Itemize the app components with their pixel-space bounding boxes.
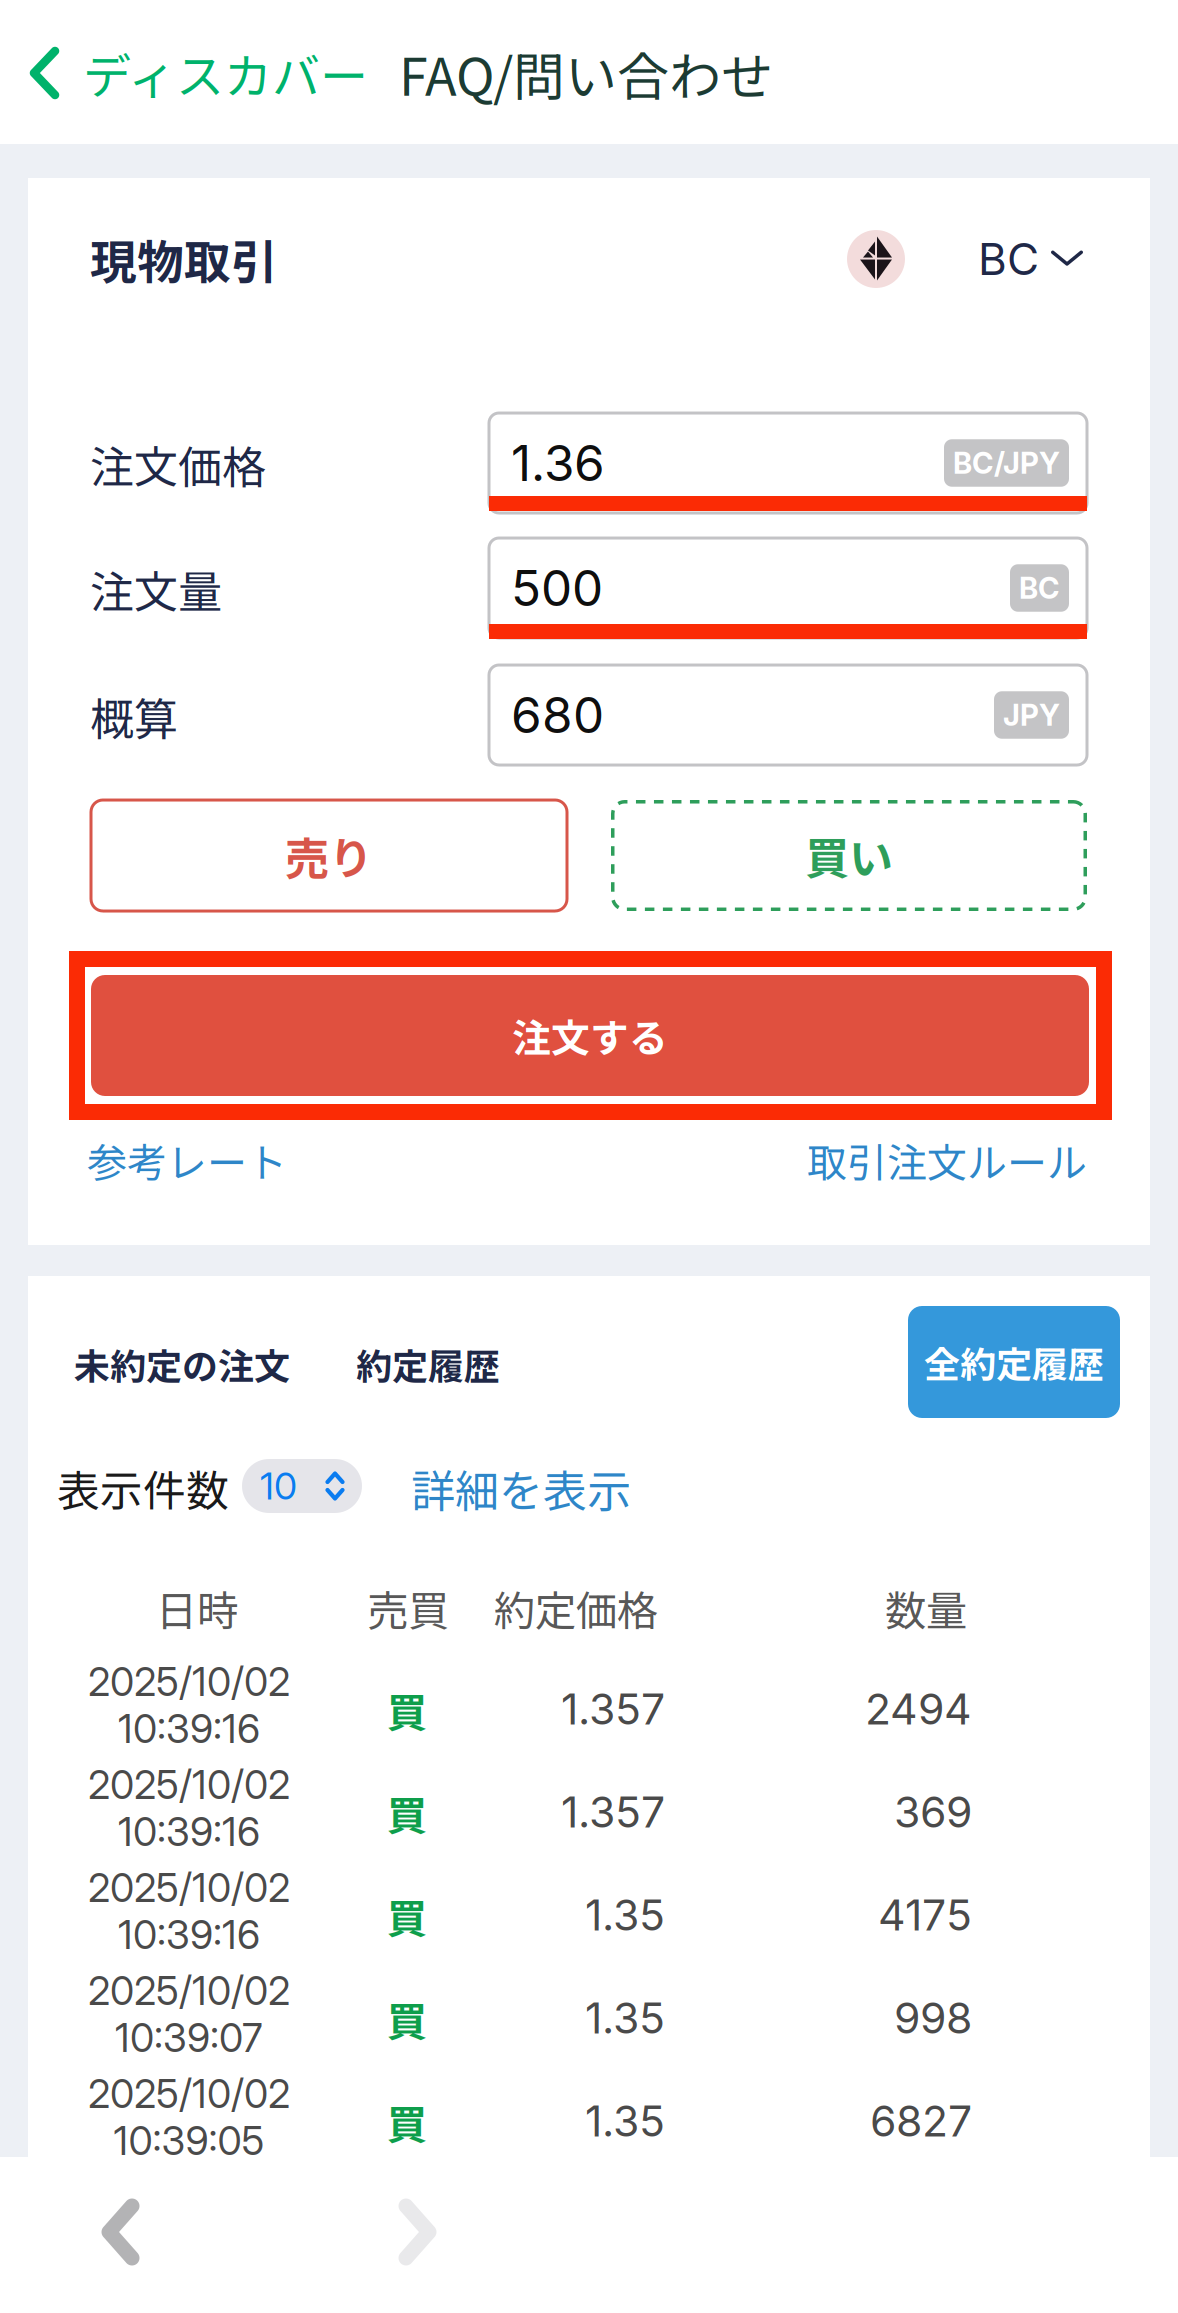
staticText: BC/JPY (953, 445, 1060, 481)
button[interactable]: 売り (91, 800, 567, 911)
staticText: 10:39:16 (118, 1705, 260, 1753)
staticText: 表示件数 (57, 1457, 229, 1519)
staticText: 売買 (367, 1578, 449, 1638)
staticText: 2025/10/02 (88, 1864, 290, 1912)
button[interactable]: 10 (242, 1459, 362, 1513)
staticText: 10 (260, 1463, 297, 1509)
button[interactable]: 未約定の注文 (74, 1328, 290, 1400)
staticText: 買 (387, 1990, 427, 2048)
staticText: BC (978, 232, 1039, 286)
staticText: BC (1019, 570, 1060, 606)
staticText: 現物取引 (90, 225, 278, 293)
staticText: 買 (387, 2093, 427, 2151)
staticText: 注文価格 (90, 432, 266, 496)
staticText: 10:39:16 (118, 1911, 260, 1959)
staticText: 1.35 (585, 2095, 665, 2147)
staticText: 売り (285, 824, 373, 887)
staticText: 約定履歴 (356, 1338, 500, 1390)
staticText: 500 (511, 558, 603, 618)
staticText: 1.357 (561, 1786, 665, 1838)
staticText: 680 (511, 685, 604, 745)
staticText: 2494 (865, 1683, 972, 1735)
staticText: 日時 (156, 1578, 238, 1638)
staticText: 数量 (885, 1578, 967, 1638)
staticText: 10:39:05 (113, 2117, 264, 2165)
staticText: ディスカバー (83, 38, 368, 108)
staticText: 2025/10/02 (88, 1967, 290, 2015)
staticText: 2025/10/02 (88, 1658, 290, 1706)
staticText: 10:39:07 (115, 2014, 263, 2062)
staticText: 全約定履歴 (924, 1336, 1104, 1388)
button[interactable]: ディスカバー (18, 26, 372, 120)
button[interactable]: 取引注文ルール (807, 1125, 1087, 1195)
staticText: 10:39:16 (118, 1808, 260, 1856)
staticText: FAQ/問い合わせ (399, 35, 773, 111)
staticText: 6827 (870, 2095, 972, 2147)
button[interactable]: 約定履歴 (356, 1328, 500, 1400)
staticText: 1.357 (561, 1683, 665, 1735)
button[interactable]: 詳細を表示 (411, 1450, 631, 1526)
staticText: 1.36 (511, 433, 605, 493)
staticText: 概算 (90, 684, 178, 748)
staticText: 買 (387, 1887, 427, 1945)
button[interactable]: 注文する (91, 975, 1089, 1096)
button[interactable]: BC (841, 224, 1089, 294)
staticText: 注文する (512, 1007, 668, 1063)
staticText: 注文量 (90, 557, 222, 621)
staticText: 2025/10/02 (88, 1761, 290, 1809)
staticText: 369 (894, 1786, 972, 1838)
button[interactable]: Next page (373, 2180, 462, 2284)
staticText: JPY (1003, 697, 1060, 733)
staticText: 4175 (878, 1889, 972, 1941)
staticText: 買 (387, 1681, 427, 1739)
staticText: 詳細を表示 (411, 1456, 631, 1520)
staticText: 998 (894, 1992, 972, 2044)
staticText: 2025/10/02 (88, 2070, 290, 2118)
staticText: 取引注文ルール (807, 1131, 1087, 1189)
button[interactable]: Previous page (76, 2180, 165, 2284)
staticText: 買 (387, 1784, 427, 1842)
staticText: 約定価格 (494, 1578, 658, 1638)
staticText: 買い (805, 824, 893, 887)
staticText: 参考レート (87, 1131, 287, 1189)
button[interactable]: 買い (611, 800, 1087, 911)
staticText: 未約定の注文 (74, 1338, 290, 1390)
staticText: 1.35 (585, 1992, 665, 2044)
button[interactable]: 参考レート (87, 1125, 287, 1195)
button[interactable]: 全約定履歴 (908, 1306, 1120, 1418)
staticText: 1.35 (585, 1889, 665, 1941)
